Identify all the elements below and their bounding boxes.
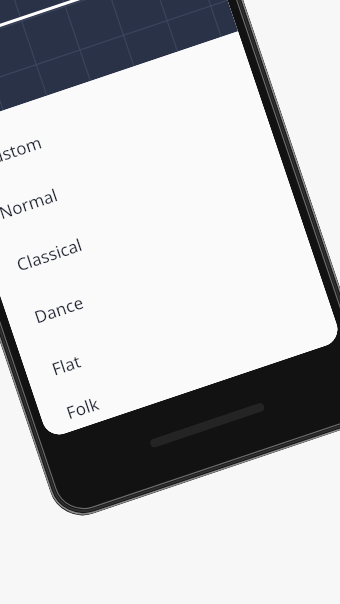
button[interactable]: EQUALIZER (0, 0, 208, 40)
staticText: Folk (63, 392, 102, 424)
staticText: Classical (14, 233, 85, 276)
button[interactable]: Classical (0, 149, 295, 300)
staticText: Normal (0, 183, 61, 224)
staticText: Flat (49, 349, 83, 380)
button[interactable]: Custom (0, 44, 260, 195)
button[interactable]: Normal (0, 97, 278, 248)
button[interactable]: Dance (1, 201, 313, 352)
button[interactable]: Flat (19, 253, 330, 404)
staticText: Custom (0, 130, 45, 172)
staticText: EQUALIZER (0, 0, 125, 7)
staticText: Dance (31, 290, 87, 328)
button[interactable]: Folk (36, 305, 340, 439)
